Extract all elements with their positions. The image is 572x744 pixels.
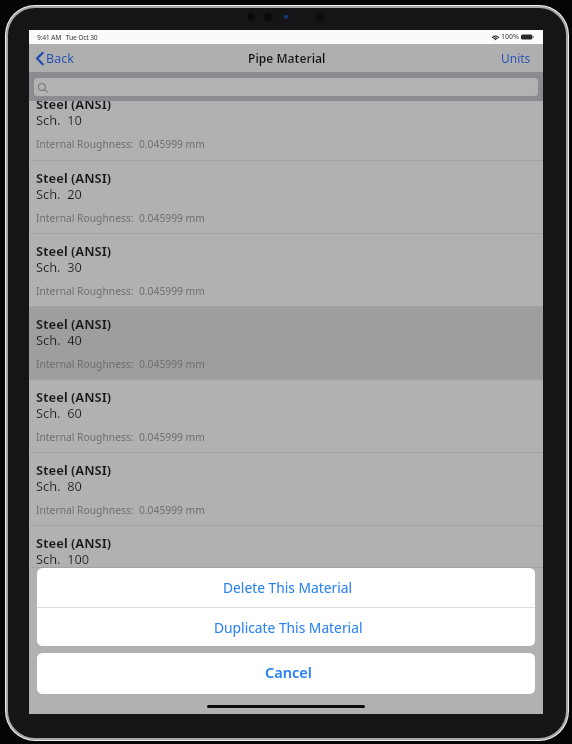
staticText: Sch. 20 [36, 185, 82, 202]
button[interactable]: Cancel [37, 653, 535, 694]
staticText: Internal Roughness: 0.045999 mm [36, 284, 205, 298]
button[interactable]: Steel (ANSI) [29, 234, 543, 307]
staticText: Internal Roughness: 0.045999 mm [36, 430, 205, 444]
staticText: Steel (ANSI) [36, 461, 111, 478]
staticText: Sch. 30 [36, 258, 82, 275]
staticText: Sch. 60 [36, 404, 82, 421]
staticText: 9:41 AM Tue Oct 30 [37, 33, 98, 42]
staticText: Internal Roughness: 0.045999 mm [36, 503, 205, 517]
staticText: Sch. 80 [36, 477, 82, 494]
staticText: Steel (ANSI) [36, 169, 111, 186]
button[interactable]: Steel (ANSI) [29, 453, 543, 526]
staticText: Duplicate This Material [214, 618, 363, 637]
staticText: Pipe Material [248, 50, 326, 66]
staticText: Steel (ANSI) [36, 315, 111, 332]
button[interactable]: Steel (ANSI) [29, 380, 543, 453]
staticText: 100% [501, 32, 519, 42]
button[interactable]: Steel (ANSI) [29, 101, 543, 161]
staticText: Delete This Material [223, 578, 353, 597]
staticText: Internal Roughness: 0.045999 mm [36, 211, 205, 225]
button[interactable]: Back [29, 46, 84, 71]
staticText: Steel (ANSI) [36, 242, 111, 259]
staticText: Internal Roughness: 0.045999 mm [36, 137, 205, 151]
staticText: Units [501, 50, 531, 66]
staticText: Cancel [265, 662, 312, 682]
button[interactable]: Delete This Material [37, 568, 535, 607]
staticText: Internal Roughness: 0.045999 mm [36, 357, 205, 371]
button[interactable]: Duplicate This Material [37, 608, 535, 646]
staticText: Steel (ANSI) [36, 101, 111, 112]
staticText: Steel (ANSI) [36, 534, 111, 551]
staticText: Sch. 100 [36, 550, 90, 567]
staticText: Steel (ANSI) [36, 388, 111, 405]
staticText: Sch. 40 [36, 331, 82, 348]
button[interactable]: Units [491, 45, 543, 71]
staticText: Back [46, 50, 74, 67]
button[interactable]: Steel (ANSI) [29, 526, 543, 568]
button[interactable]: Steel (ANSI) [29, 161, 543, 234]
button[interactable]: Steel (ANSI) [29, 307, 543, 380]
staticText: Sch. 10 [36, 111, 82, 128]
